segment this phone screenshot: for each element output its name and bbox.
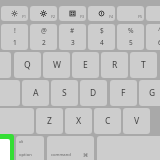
staticText: $ xyxy=(100,26,104,35)
button[interactable]: Q xyxy=(14,52,41,78)
staticText: F2 xyxy=(51,14,55,19)
staticText: F3 xyxy=(80,14,84,19)
staticText: Z xyxy=(47,115,52,127)
staticText: R xyxy=(112,59,118,71)
button[interactable]: 4 xyxy=(88,24,115,50)
staticText: % xyxy=(128,26,134,35)
button[interactable]: F4 xyxy=(88,6,115,21)
staticText: ! xyxy=(14,26,16,35)
button[interactable]: 1 xyxy=(1,24,28,50)
staticText: S xyxy=(62,87,67,99)
button[interactable]: G xyxy=(139,80,160,106)
staticText: F1 xyxy=(22,14,26,19)
staticText: G xyxy=(149,87,156,99)
button[interactable]: Tab xyxy=(0,52,11,78)
button[interactable]: V xyxy=(123,108,150,134)
button[interactable]: R xyxy=(101,52,128,78)
button[interactable]: C xyxy=(94,108,121,134)
button[interactable]: Option xyxy=(16,136,44,160)
button[interactable]: F1 xyxy=(1,6,28,21)
staticText: command xyxy=(51,152,71,158)
staticText: option xyxy=(19,152,32,158)
button[interactable]: Selected key xyxy=(0,134,14,160)
button[interactable]: F2 xyxy=(30,6,57,21)
staticText: ⌘ xyxy=(83,152,88,158)
staticText: 3 xyxy=(71,38,75,47)
staticText: # xyxy=(70,26,75,35)
staticText: T xyxy=(141,59,146,71)
button[interactable]: T xyxy=(130,52,157,78)
staticText: F xyxy=(121,87,126,99)
button[interactable]: Command xyxy=(47,136,94,160)
button[interactable]: D xyxy=(80,80,107,106)
button[interactable]: E xyxy=(72,52,99,78)
button[interactable]: 5 xyxy=(117,24,144,50)
button[interactable]: F3 xyxy=(59,6,86,21)
button[interactable]: A xyxy=(22,80,49,106)
staticText: 2 xyxy=(42,38,46,47)
button[interactable]: 6 xyxy=(146,24,160,50)
staticText: @ xyxy=(41,26,47,35)
staticText: 1 xyxy=(13,38,17,47)
staticText: A xyxy=(33,87,39,99)
staticText: X xyxy=(76,115,82,127)
staticText: 6 xyxy=(158,38,160,47)
button[interactable]: Z xyxy=(36,108,63,134)
button[interactable]: S xyxy=(51,80,78,106)
staticText: ^ xyxy=(158,26,160,35)
button[interactable]: F5 xyxy=(117,6,144,21)
staticText: Q xyxy=(24,59,31,71)
staticText: F5 xyxy=(138,14,142,19)
button[interactable]: 2 xyxy=(30,24,57,50)
staticText: alt xyxy=(19,139,24,144)
button[interactable]: F6 xyxy=(146,6,160,21)
staticText: V xyxy=(134,115,140,127)
staticText: D xyxy=(90,87,97,99)
staticText: F4 xyxy=(109,14,113,19)
staticText: E xyxy=(83,59,88,71)
staticText: W xyxy=(53,59,61,71)
button[interactable]: W xyxy=(43,52,70,78)
button[interactable]: X xyxy=(65,108,92,134)
staticText: C xyxy=(105,115,111,127)
button[interactable]: 3 xyxy=(59,24,86,50)
button[interactable]: F xyxy=(110,80,137,106)
staticText: 4 xyxy=(100,38,104,47)
staticText: 5 xyxy=(129,38,133,47)
